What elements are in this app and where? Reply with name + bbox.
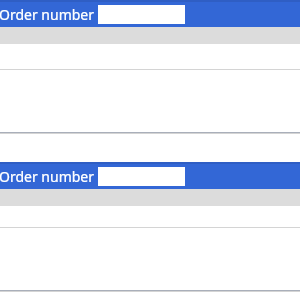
button[interactable]: Order number bbox=[0, 164, 300, 189]
staticText: Order number bbox=[0, 5, 95, 24]
staticText: Order number bbox=[0, 167, 95, 186]
button[interactable]: Order number bbox=[0, 2, 300, 27]
